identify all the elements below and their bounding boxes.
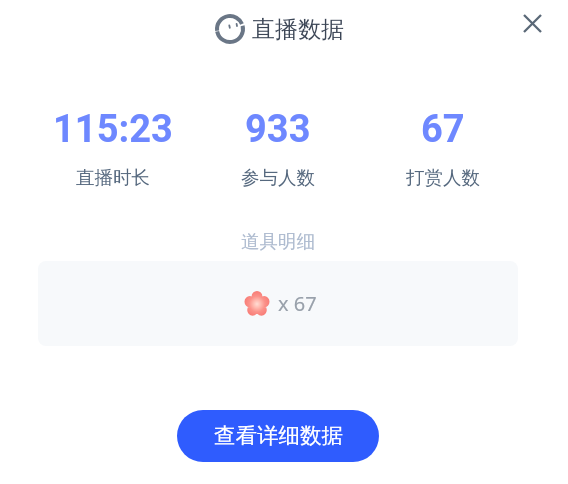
staticText: 查看详细数据 (214, 422, 343, 449)
button[interactable]: 查看详细数据 (177, 410, 379, 462)
staticText: 打赏人数 (406, 166, 480, 189)
staticText: 933 (245, 102, 311, 158)
staticText: x 67 (278, 290, 317, 317)
button[interactable]: Close (514, 5, 550, 41)
staticText: 直播时长 (76, 166, 150, 189)
staticText: 参与人数 (241, 166, 315, 189)
staticText: 道具明细 (241, 230, 315, 253)
staticText: 115:23 (53, 102, 173, 158)
staticText: 67 (421, 102, 465, 158)
staticText: 直播数据 (252, 15, 344, 44)
